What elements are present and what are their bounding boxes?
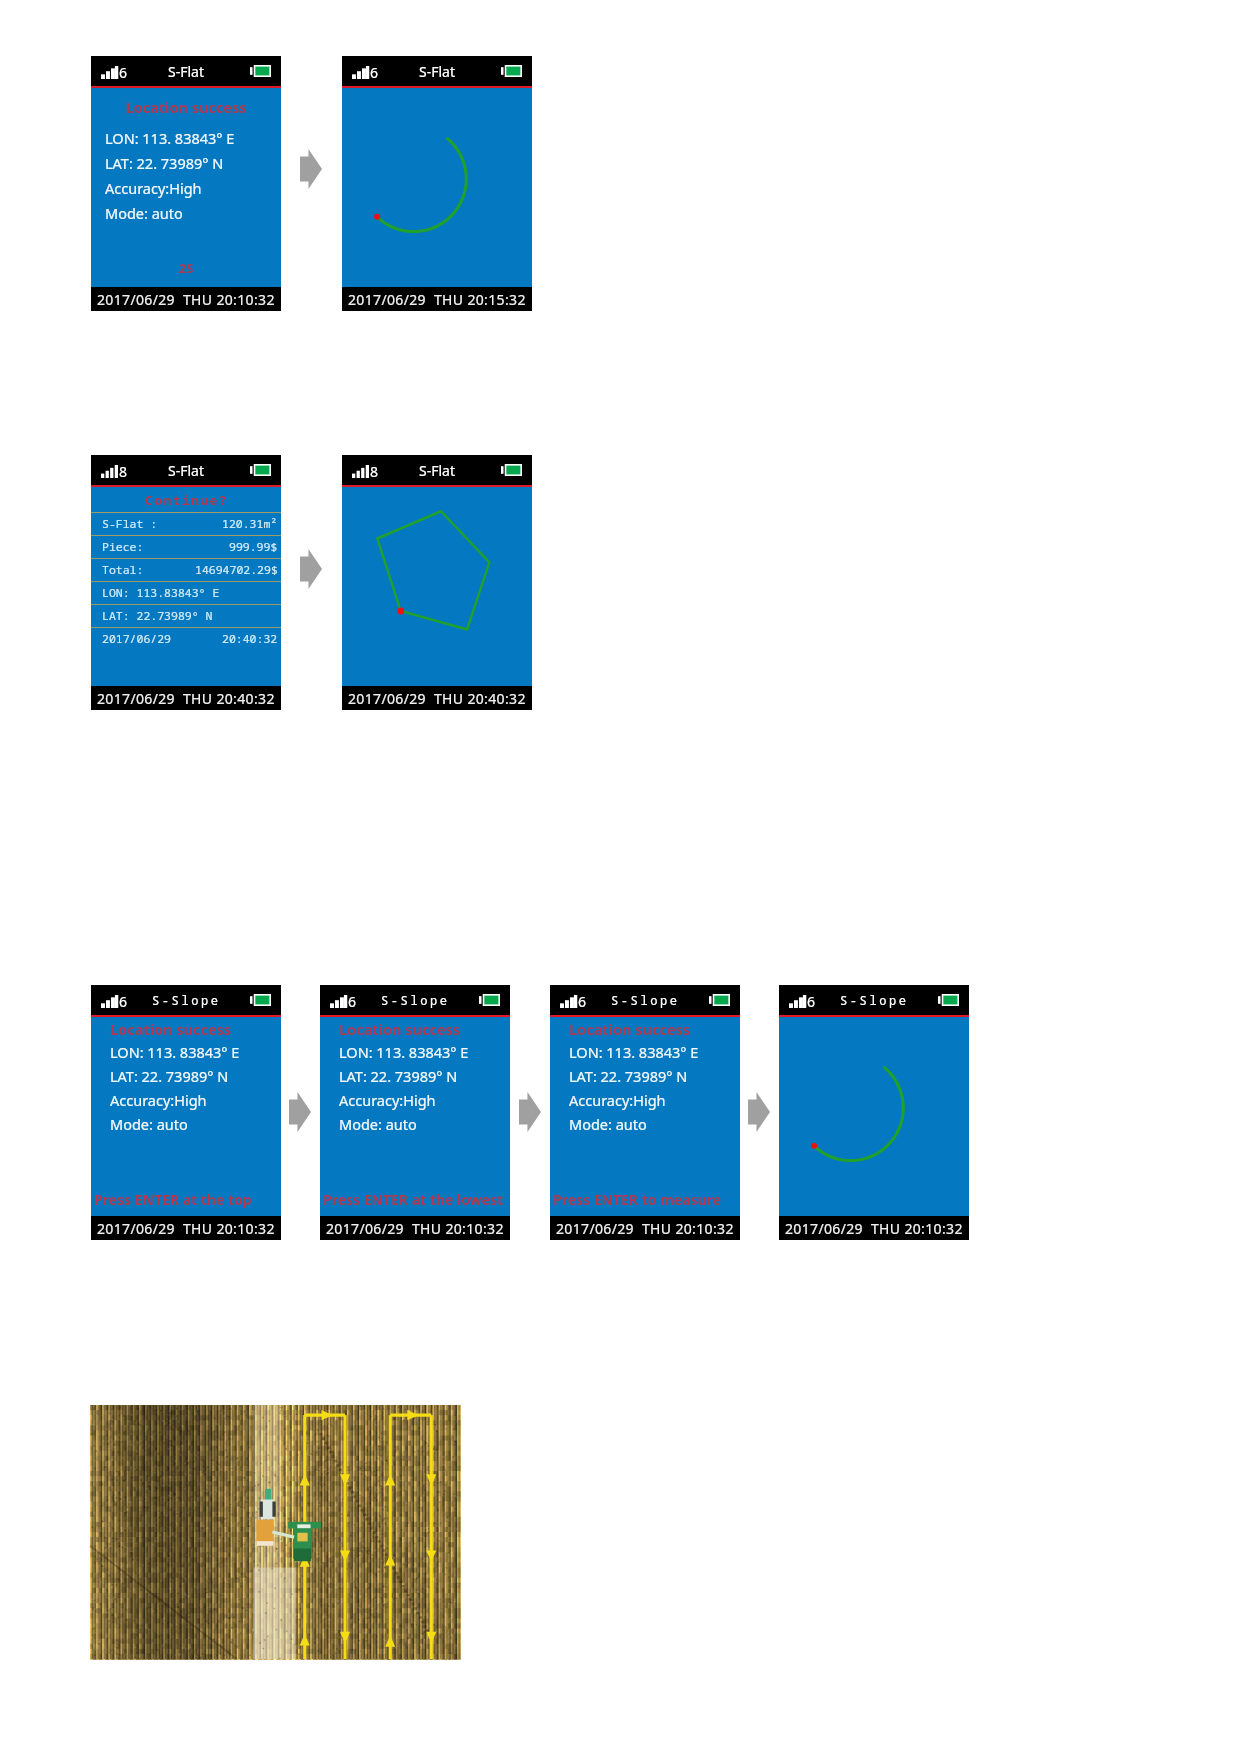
staticText: Press ENTER at the top: [94, 1190, 281, 1209]
staticText: Location success: [339, 1019, 510, 1039]
staticText: Piece:: [102, 539, 144, 555]
button[interactable]: S-Flat device screen: [91, 455, 281, 710]
staticText: 6: [578, 992, 587, 1011]
staticText: 2017/06/29 THU 20:10:32: [97, 290, 275, 309]
staticText: 20:40:32: [222, 631, 278, 647]
button[interactable]: S-Slope device screen: [550, 985, 740, 1240]
staticText: 14694702.29$: [195, 562, 278, 578]
staticText: Accuracy:High: [339, 1090, 436, 1110]
staticText: Location success: [91, 97, 281, 117]
staticText: LON: 113.83843° E: [102, 585, 220, 601]
staticText: LON: 113. 83843° E: [569, 1042, 699, 1062]
staticText: Location success: [110, 1019, 281, 1039]
button[interactable]: Next step: [519, 1092, 541, 1132]
staticText: Total:: [102, 562, 144, 578]
staticText: 999.99$: [229, 539, 278, 555]
button[interactable]: S-Flat device screen: [91, 56, 281, 311]
staticText: S-Flat: [419, 461, 455, 480]
staticText: S-Flat: [168, 461, 204, 480]
staticText: 8: [370, 462, 379, 481]
button[interactable]: Next step: [300, 549, 322, 589]
staticText: 6: [119, 992, 128, 1011]
button[interactable]: S-Flat device screen: [342, 56, 532, 311]
staticText: S-Slope: [381, 992, 450, 1008]
staticText: 6: [807, 992, 816, 1011]
button[interactable]: Aerial photo of a harvester working a fi…: [90, 1405, 457, 1659]
staticText: S-Flat: [419, 62, 455, 81]
staticText: Mode: auto: [339, 1114, 417, 1134]
staticText: Mode: auto: [569, 1114, 647, 1134]
button[interactable]: S-Flat device screen: [342, 455, 532, 710]
staticText: 2017/06/29: [102, 631, 171, 647]
staticText: Mode: auto: [110, 1114, 188, 1134]
staticText: 2S: [91, 259, 281, 277]
staticText: LON: 113. 83843° E: [105, 128, 235, 148]
staticText: 2017/06/29 THU 20:10:32: [785, 1219, 963, 1238]
staticText: Mode: auto: [105, 203, 183, 223]
button[interactable]: S-Slope device screen: [779, 985, 969, 1240]
staticText: 2017/06/29 THU 20:10:32: [97, 1219, 275, 1238]
staticText: 2017/06/29 THU 20:40:32: [97, 689, 275, 708]
staticText: S-Slope: [840, 992, 909, 1008]
button[interactable]: Next step: [748, 1092, 770, 1132]
staticText: LAT: 22. 73989° N: [339, 1066, 458, 1086]
button[interactable]: S-Slope device screen: [91, 985, 281, 1240]
staticText: Accuracy:High: [569, 1090, 666, 1110]
staticText: LAT: 22. 73989° N: [569, 1066, 688, 1086]
staticText: Press ENTER to measure: [553, 1190, 740, 1209]
staticText: LON: 113. 83843° E: [339, 1042, 469, 1062]
staticText: Continue?: [145, 491, 228, 509]
staticText: S-Flat :: [102, 516, 158, 532]
staticText: Press ENTER at the lowest: [323, 1190, 510, 1209]
staticText: LON: 113. 83843° E: [110, 1042, 240, 1062]
staticText: S-Flat: [168, 62, 204, 81]
staticText: Accuracy:High: [105, 178, 202, 198]
button[interactable]: Next step: [300, 149, 322, 189]
staticText: 120.31m²: [222, 516, 278, 532]
staticText: 2017/06/29 THU 20:40:32: [348, 689, 526, 708]
staticText: 2017/06/29 THU 20:15:32: [348, 290, 526, 309]
staticText: Accuracy:High: [110, 1090, 207, 1110]
staticText: 6: [119, 63, 128, 82]
staticText: S-Slope: [611, 992, 680, 1008]
button[interactable]: S-Slope device screen: [320, 985, 510, 1240]
staticText: 2017/06/29 THU 20:10:32: [556, 1219, 734, 1238]
staticText: Location success: [569, 1019, 740, 1039]
staticText: 6: [370, 63, 379, 82]
staticText: 2017/06/29 THU 20:10:32: [326, 1219, 504, 1238]
staticText: LAT: 22. 73989° N: [105, 153, 224, 173]
staticText: 6: [348, 992, 357, 1011]
staticText: LAT: 22.73989° N: [102, 608, 213, 624]
staticText: S-Slope: [152, 992, 221, 1008]
button[interactable]: Next step: [289, 1092, 311, 1132]
staticText: 8: [119, 462, 128, 481]
staticText: LAT: 22. 73989° N: [110, 1066, 229, 1086]
